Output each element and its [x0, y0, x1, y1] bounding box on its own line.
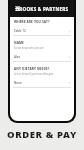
- staticText: NAME: [14, 41, 24, 45]
- staticText: Table 12: [14, 29, 26, 33]
- button[interactable]: WHERE ARE YOU SAT?: [10, 20, 74, 36]
- staticText: BROOKS & PARTNERS: [16, 6, 69, 12]
- button[interactable]: Menu: [13, 4, 22, 13]
- staticText: ANY DIETARY NEEDS?: [14, 67, 50, 71]
- staticText: ORDER & PAY: [7, 128, 77, 141]
- staticText: Alex: [14, 55, 21, 59]
- button[interactable]: NAME: [10, 41, 74, 62]
- staticText: None: [14, 81, 22, 85]
- staticText: So we know who you are: [14, 46, 45, 50]
- button[interactable]: ANY DIETARY NEEDS?: [10, 67, 74, 88]
- staticText: Let us know if you have allergies: [14, 72, 54, 76]
- staticText: WHERE ARE YOU SAT?: [14, 20, 50, 24]
